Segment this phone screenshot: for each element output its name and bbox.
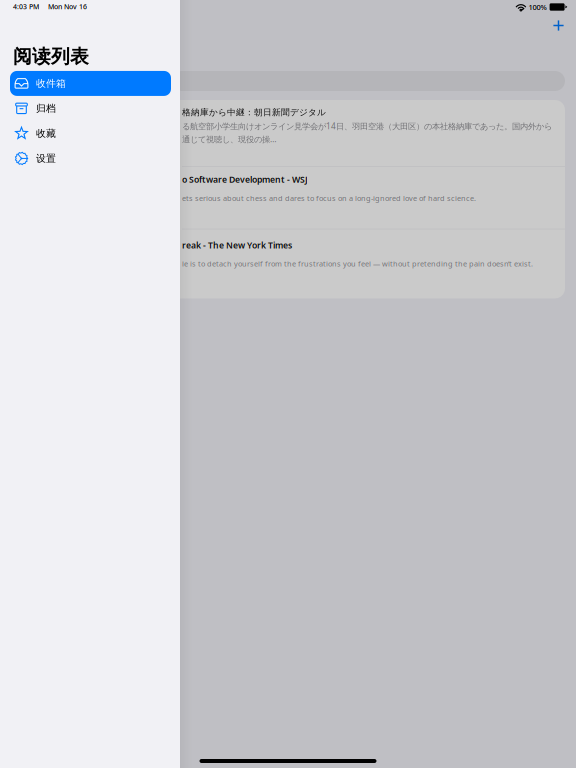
staticText: 通じて視聴し、現役の操… <box>182 134 277 145</box>
button[interactable]: 格納庫から中継：朝日新聞デジタル <box>168 100 565 166</box>
staticText: る航空部小学生向けオンライン見学会が14日、羽田空港（大田区）の本社格納庫であっ… <box>182 121 552 132</box>
staticText: 100% <box>528 2 546 12</box>
staticText: 设置 <box>36 152 56 164</box>
staticText: le is to detach yourself from the frustr… <box>182 259 533 269</box>
staticText: 格納庫から中継：朝日新聞デジタル <box>182 107 326 118</box>
button[interactable]: 设置 <box>10 146 171 171</box>
button[interactable]: o Software Development - WSJ <box>168 167 565 229</box>
button[interactable]: 归档 <box>10 96 171 121</box>
staticText: 4:03 PM <box>13 2 39 11</box>
staticText: Mon Nov 16 <box>48 2 87 11</box>
staticText: ets serious about chess and dares to foc… <box>182 193 476 203</box>
button[interactable]: reak - The New York Times <box>168 229 565 298</box>
staticText: 收件箱 <box>36 77 66 89</box>
button[interactable]: New item <box>544 11 573 40</box>
button[interactable]: 收藏 <box>10 121 171 146</box>
staticText: reak - The New York Times <box>182 239 292 251</box>
staticText: 收藏 <box>36 127 56 139</box>
staticText: 归档 <box>36 102 56 114</box>
button[interactable]: 收件箱 <box>10 71 171 96</box>
staticText: 阅读列表 <box>13 45 89 68</box>
staticText: o Software Development - WSJ <box>182 174 308 185</box>
